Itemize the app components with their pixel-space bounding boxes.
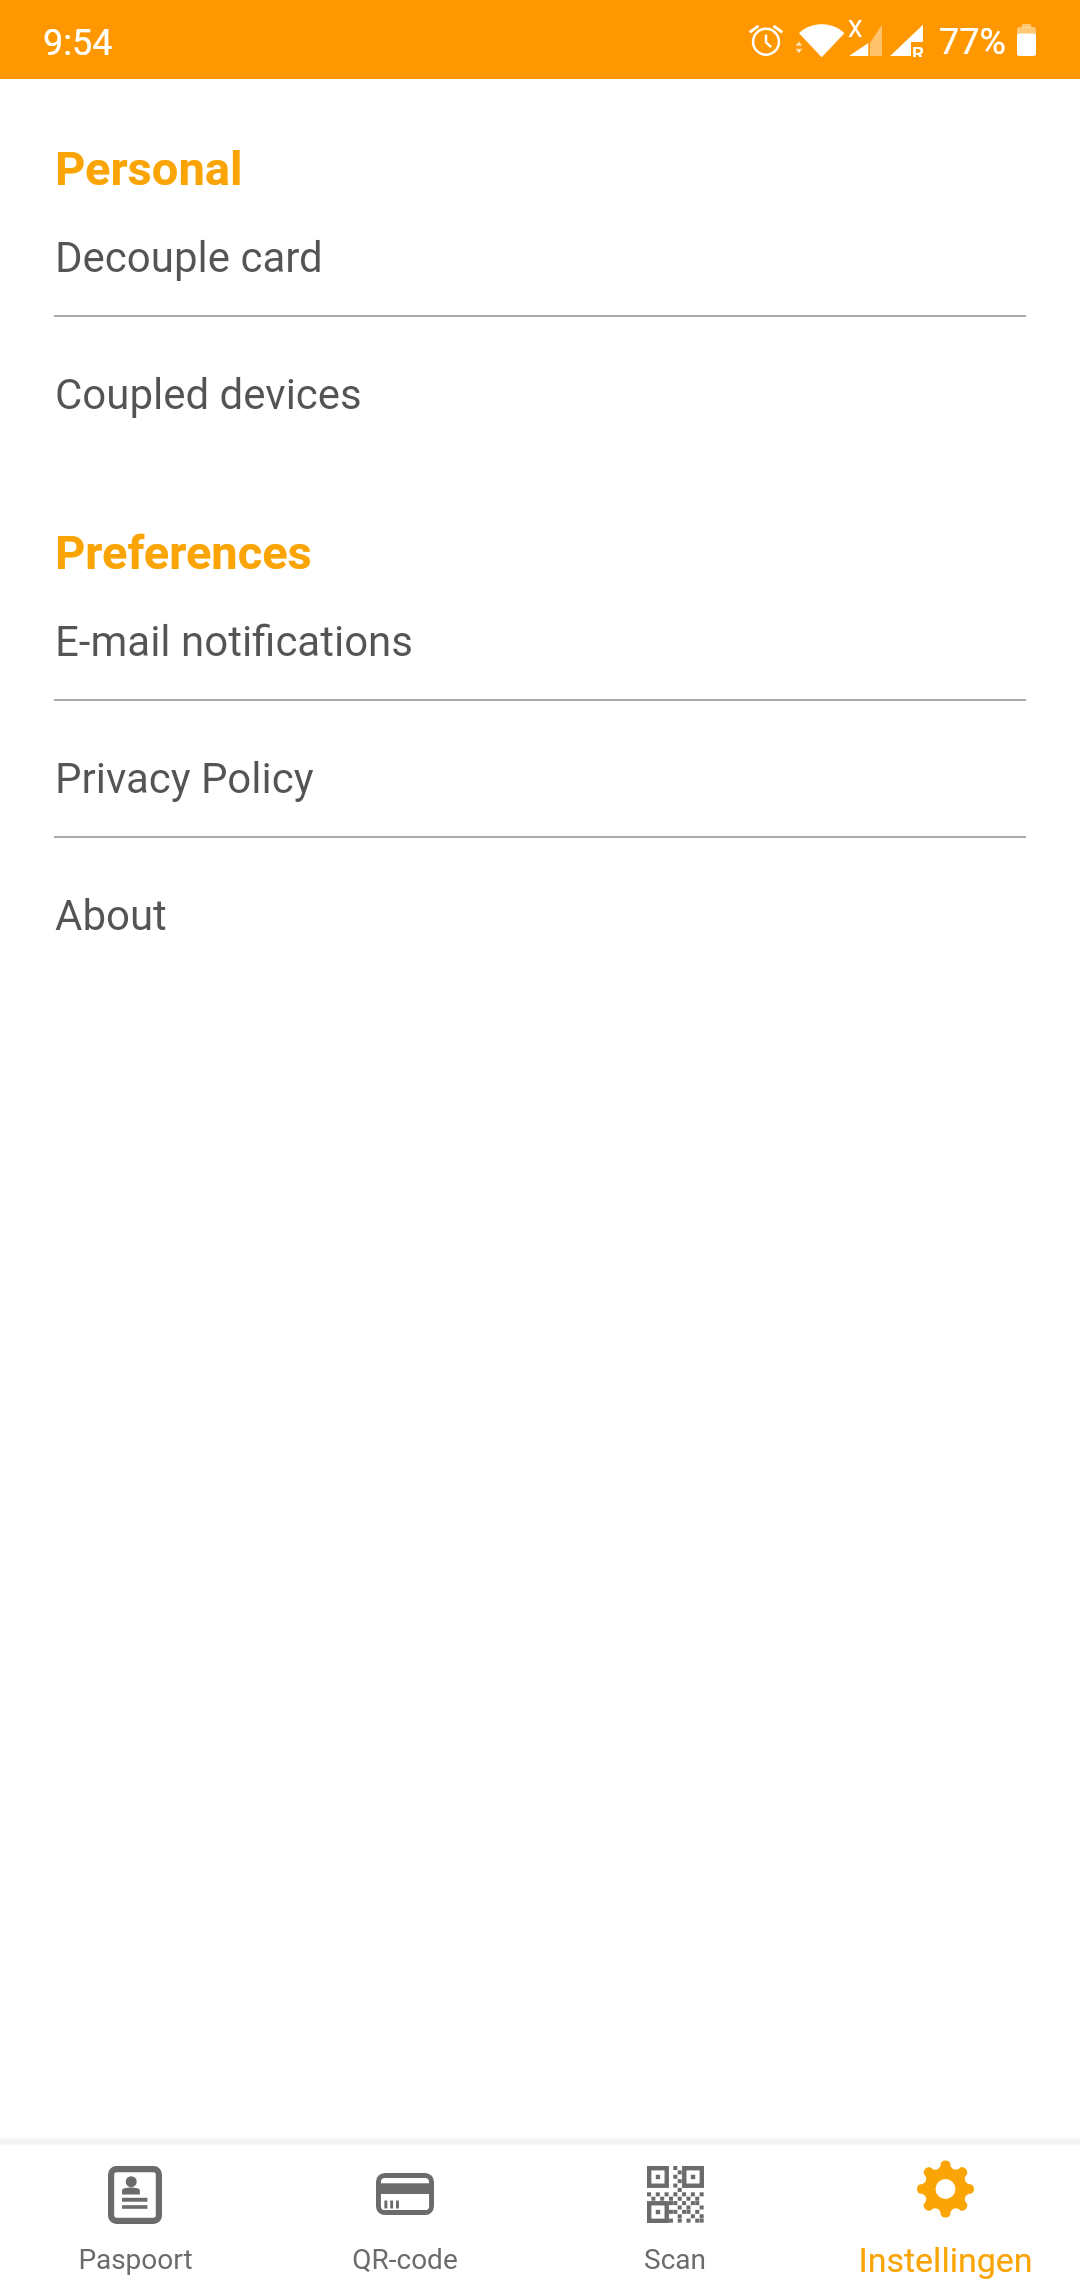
staticText: About bbox=[55, 891, 167, 940]
staticText: E-mail notifications bbox=[55, 617, 413, 666]
staticText: Coupled devices bbox=[55, 370, 362, 419]
button[interactable]: E-mail notifications bbox=[0, 573, 1080, 699]
staticText: Scan bbox=[644, 2243, 706, 2276]
staticText: 77% bbox=[939, 21, 1006, 63]
button[interactable]: Scan bbox=[540, 2145, 810, 2280]
button[interactable]: About bbox=[0, 837, 1080, 974]
staticText: X bbox=[848, 16, 863, 43]
staticText: Preferences bbox=[55, 525, 312, 580]
staticText: Personal bbox=[55, 141, 243, 196]
staticText: 9:54 bbox=[43, 22, 113, 64]
staticText: Instellingen bbox=[858, 2240, 1033, 2280]
button[interactable]: QR-code bbox=[270, 2145, 540, 2280]
staticText: QR-code bbox=[352, 2243, 458, 2276]
button[interactable]: Instellingen bbox=[810, 2145, 1080, 2280]
staticText: Privacy Policy bbox=[55, 754, 314, 803]
button[interactable]: Decouple card bbox=[0, 189, 1080, 315]
staticText: R bbox=[912, 42, 924, 57]
staticText: Decouple card bbox=[55, 233, 323, 282]
button[interactable]: Privacy Policy bbox=[0, 700, 1080, 837]
staticText: Paspoort bbox=[78, 2243, 193, 2276]
button[interactable]: Paspoort bbox=[0, 2145, 270, 2280]
button[interactable]: Coupled devices bbox=[0, 316, 1080, 442]
